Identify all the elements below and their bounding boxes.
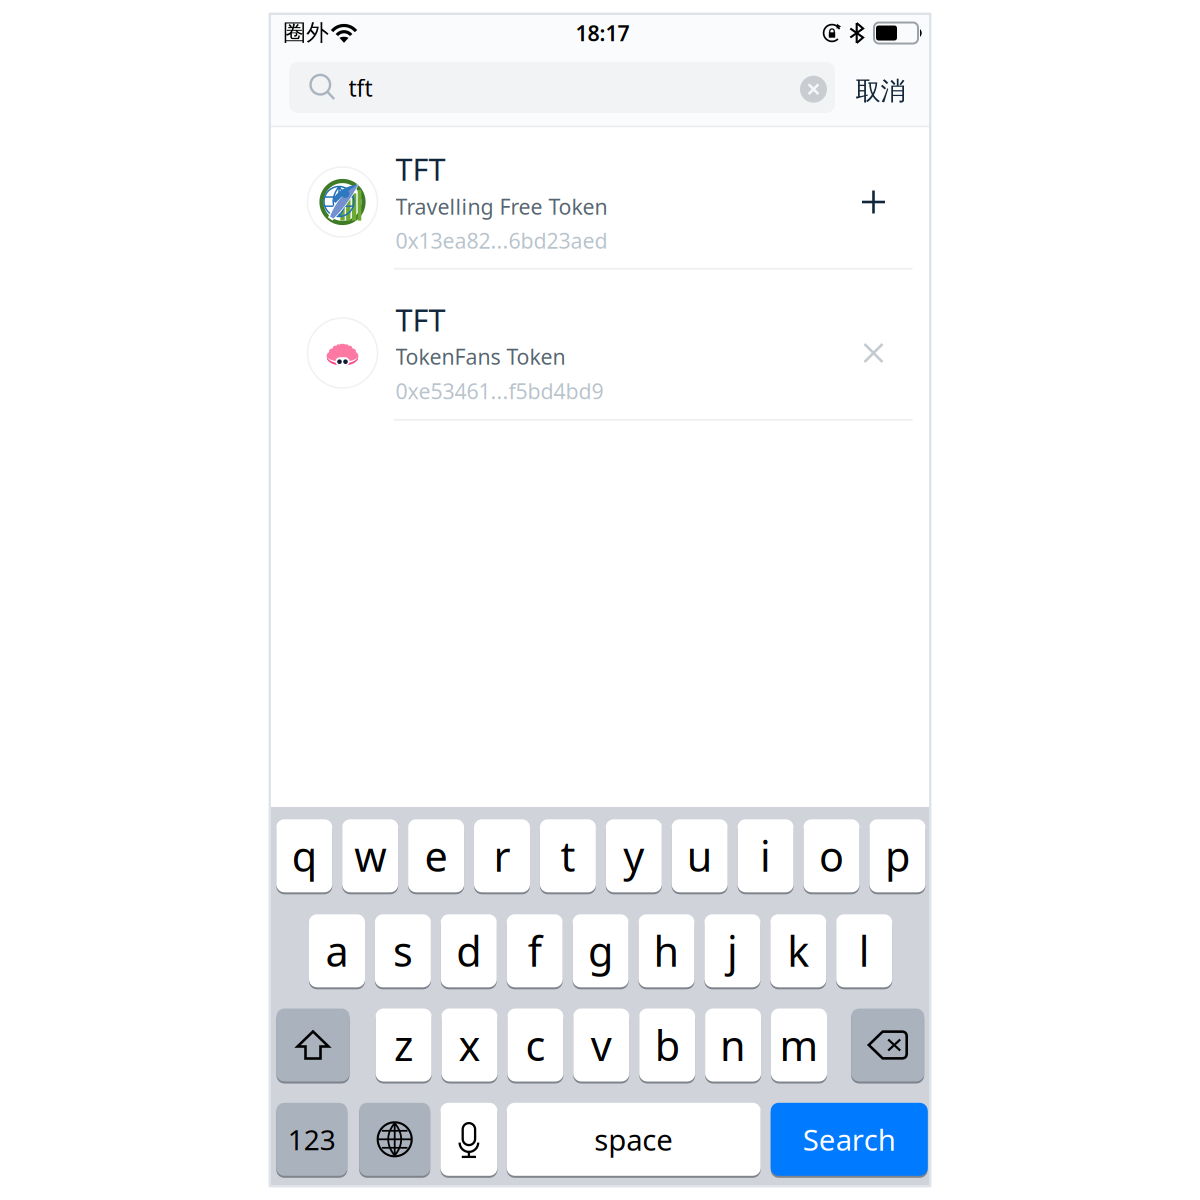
button[interactable]: space [507, 1103, 761, 1178]
staticText: v [591, 1018, 612, 1072]
button[interactable]: k [770, 914, 826, 989]
staticText: Travelling Free Token [395, 192, 607, 221]
staticText: space [594, 1120, 673, 1159]
staticText: TFT [395, 148, 445, 189]
button[interactable]: 取消 [849, 63, 923, 119]
button[interactable]: w [342, 819, 398, 894]
button[interactable]: j [704, 914, 760, 989]
button[interactable]: g [573, 914, 629, 989]
staticText: x [458, 1018, 480, 1072]
button[interactable]: p [869, 819, 925, 894]
button[interactable]: Search [771, 1103, 928, 1178]
button[interactable]: z [376, 1008, 432, 1083]
button[interactable] [0, 0, 1200, 1200]
staticText: e [425, 828, 448, 883]
staticText: c [525, 1018, 545, 1072]
button[interactable]: t [540, 819, 596, 894]
button[interactable]: s [375, 914, 431, 989]
staticText: k [787, 923, 809, 978]
button[interactable]: Remove token [849, 329, 897, 377]
staticText: m [779, 1018, 818, 1072]
staticText: i [760, 828, 771, 883]
button[interactable]: d [441, 914, 497, 989]
staticText: TokenFans Token [395, 342, 565, 371]
staticText: 123 [288, 1121, 336, 1158]
button[interactable]: h [638, 914, 694, 989]
staticText: s [393, 923, 413, 978]
staticText: q [292, 828, 317, 883]
staticText: a [325, 923, 348, 978]
staticText: w [354, 828, 386, 883]
button[interactable]: Next keyboard [359, 1103, 430, 1178]
button[interactable]: q [276, 819, 332, 894]
staticText: n [720, 1018, 746, 1072]
button[interactable]: 123 [276, 1103, 347, 1178]
button[interactable] [0, 0, 1200, 1200]
staticText: 0xe53461...f5bd4bd9 [395, 377, 603, 405]
staticText: u [687, 828, 713, 883]
staticText: 取消 [855, 75, 905, 106]
button[interactable]: Shift [276, 1008, 349, 1083]
staticText: g [588, 923, 613, 978]
button[interactable]: c [507, 1008, 563, 1083]
button[interactable]: r [474, 819, 530, 894]
button[interactable]: Add token [849, 178, 897, 226]
staticText: f [528, 923, 542, 978]
button[interactable]: o [803, 819, 859, 894]
button[interactable]: u [672, 819, 728, 894]
staticText: 18:17 [575, 19, 629, 47]
staticText: 0x13ea82...6bd23aed [395, 226, 607, 255]
button[interactable]: Dictation [440, 1103, 497, 1178]
staticText: TFT [395, 299, 445, 340]
staticText: y [623, 828, 644, 883]
button[interactable]: n [705, 1008, 761, 1083]
button[interactable]: f [507, 914, 563, 989]
button[interactable]: e [408, 819, 464, 894]
staticText: l [859, 923, 870, 978]
staticText: d [456, 923, 481, 978]
button[interactable]: b [639, 1008, 695, 1083]
staticText: h [653, 923, 679, 978]
staticText: o [819, 828, 844, 883]
button[interactable]: a [309, 914, 365, 989]
staticText: t [560, 828, 575, 883]
button[interactable]: y [606, 819, 662, 894]
staticText: tft [348, 73, 372, 103]
button[interactable]: i [738, 819, 794, 894]
staticText: b [655, 1018, 680, 1072]
staticText: z [394, 1018, 413, 1072]
button[interactable]: v [573, 1008, 629, 1083]
button[interactable]: x [441, 1008, 497, 1083]
button[interactable]: Delete [851, 1008, 924, 1083]
staticText: Search [803, 1120, 896, 1159]
staticText: p [885, 828, 910, 883]
button[interactable]: l [836, 914, 892, 989]
staticText: 圈外 [283, 19, 329, 47]
button[interactable]: Clear text [792, 68, 835, 111]
staticText: r [493, 828, 510, 883]
button[interactable]: m [771, 1008, 827, 1083]
staticText: j [727, 923, 738, 978]
